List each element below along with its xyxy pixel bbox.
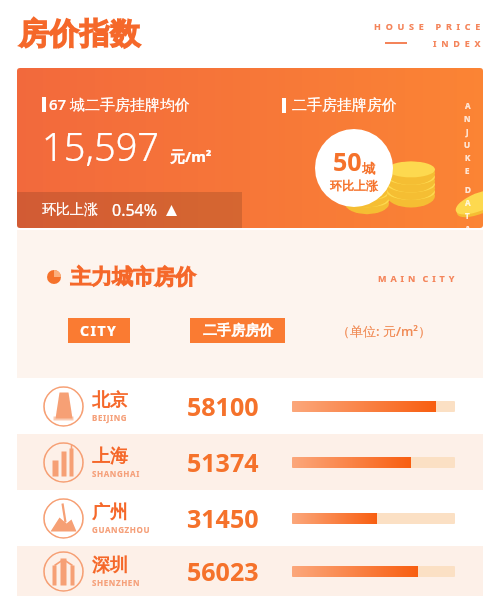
staticText: U: [464, 139, 471, 150]
other: BEIJING icon: [43, 386, 84, 427]
button[interactable]: CITY: [68, 318, 130, 343]
staticText: 主力城市房价: [70, 264, 196, 290]
button[interactable]: BEIJING icon: [17, 378, 483, 434]
staticText: K: [465, 152, 471, 163]
button[interactable]: SHENZHEN icon: [17, 546, 483, 596]
other: GUANGZHOU icon: [43, 498, 84, 539]
other: SHENZHEN icon: [43, 551, 84, 592]
button[interactable]: GUANGZHOU icon: [17, 490, 483, 546]
staticText: 环比上涨: [42, 201, 98, 219]
staticText: 房价指数: [18, 15, 140, 53]
other: SHANGHAI icon: [43, 442, 84, 483]
staticText: 元/m²: [170, 146, 212, 166]
staticText: N: [464, 113, 471, 124]
staticText: SHENZHEN: [92, 577, 141, 588]
staticText: 二手房挂牌房价: [292, 96, 397, 115]
button[interactable]: 67 城二手房挂牌均价: [17, 68, 483, 228]
staticText: BEIJING: [92, 412, 128, 423]
staticText: M A I N C I T Y: [378, 272, 456, 284]
staticText: H O U S E P R I C E: [374, 20, 482, 32]
staticText: E: [465, 165, 470, 176]
button[interactable]: 二手房房价: [190, 318, 285, 343]
staticText: （单位: 元/m²）: [337, 322, 431, 340]
staticText: A: [465, 223, 471, 228]
staticText: I N D E X: [433, 37, 482, 49]
staticText: 56023: [187, 554, 259, 588]
staticText: GUANGZHOU: [92, 524, 151, 535]
button[interactable]: SHANGHAI icon: [17, 434, 483, 490]
staticText: 环比上涨: [330, 178, 378, 193]
staticText: CITY: [80, 321, 118, 340]
staticText: 50: [333, 144, 362, 178]
staticText: 51374: [187, 445, 259, 479]
staticText: 31450: [187, 501, 259, 535]
staticText: 深圳: [92, 554, 128, 577]
staticText: 上海: [92, 445, 128, 468]
staticText: SHANGHAI: [92, 468, 140, 479]
staticText: 0.54%: [112, 199, 158, 221]
staticText: 67 城二手房挂牌均价: [49, 94, 191, 114]
staticText: 58100: [187, 389, 259, 423]
staticText: 广州: [92, 501, 128, 524]
staticText: D: [465, 184, 471, 195]
staticText: 城: [362, 160, 375, 176]
staticText: 二手房房价: [203, 322, 273, 340]
button[interactable]: 主力城市房价: [47, 264, 196, 290]
staticText: A: [465, 197, 471, 208]
staticText: A: [465, 100, 471, 111]
staticText: J: [466, 126, 469, 137]
staticText: 15,597: [42, 120, 160, 172]
staticText: 北京: [92, 389, 128, 412]
staticText: T: [465, 210, 470, 221]
